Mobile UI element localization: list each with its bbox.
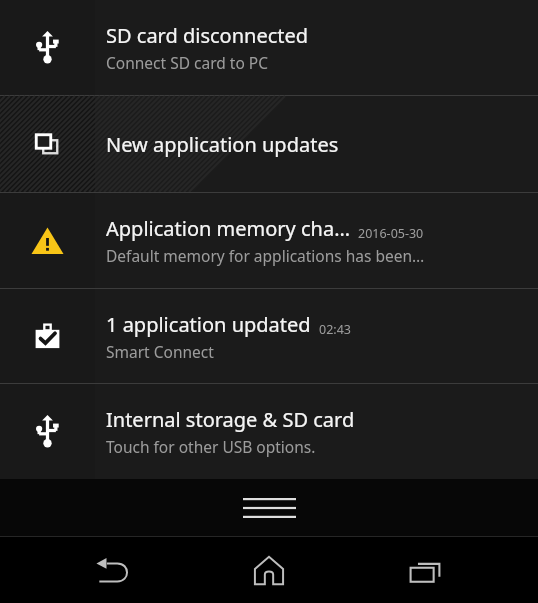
staticText: Application memory cha…: [106, 215, 350, 242]
staticText: 2016-05-30: [358, 225, 424, 242]
staticText: Default memory for applications has been…: [106, 245, 425, 266]
staticText: 1 application updated: [106, 311, 311, 338]
staticText: Touch for other USB options.: [106, 436, 316, 457]
button[interactable]: New application updates: [0, 96, 538, 192]
button[interactable]: Recent apps: [382, 539, 468, 601]
staticText: 02:43: [319, 321, 351, 338]
staticText: Connect SD card to PC: [106, 52, 268, 73]
staticText: SD card disconnected: [106, 22, 309, 49]
button[interactable]: Home: [226, 539, 312, 601]
button[interactable]: Application memory cha…: [0, 193, 538, 288]
button[interactable]: Collapse notification shade: [0, 479, 538, 536]
staticText: New application updates: [106, 131, 339, 158]
staticText: Internal storage & SD card: [106, 406, 355, 433]
button[interactable]: Internal storage & SD card: [0, 384, 538, 479]
button[interactable]: SD card disconnected: [0, 0, 538, 95]
button[interactable]: Back: [70, 539, 156, 601]
staticText: Smart Connect: [106, 341, 214, 362]
button[interactable]: 1 application updated: [0, 289, 538, 383]
